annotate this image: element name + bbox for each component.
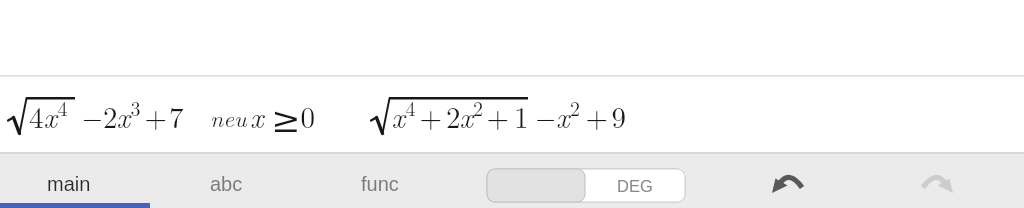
button[interactable]: DEG bbox=[486, 168, 686, 203]
button[interactable]: main bbox=[0, 154, 150, 208]
button[interactable] bbox=[768, 165, 808, 201]
button[interactable]: abc bbox=[151, 154, 301, 208]
button[interactable] bbox=[917, 165, 957, 201]
staticText: DEG bbox=[617, 177, 653, 195]
staticText: main bbox=[47, 173, 91, 195]
button[interactable]: func bbox=[305, 154, 455, 208]
staticText: func bbox=[361, 173, 399, 195]
button[interactable] bbox=[0, 77, 1024, 151]
staticText: abc bbox=[210, 173, 243, 195]
